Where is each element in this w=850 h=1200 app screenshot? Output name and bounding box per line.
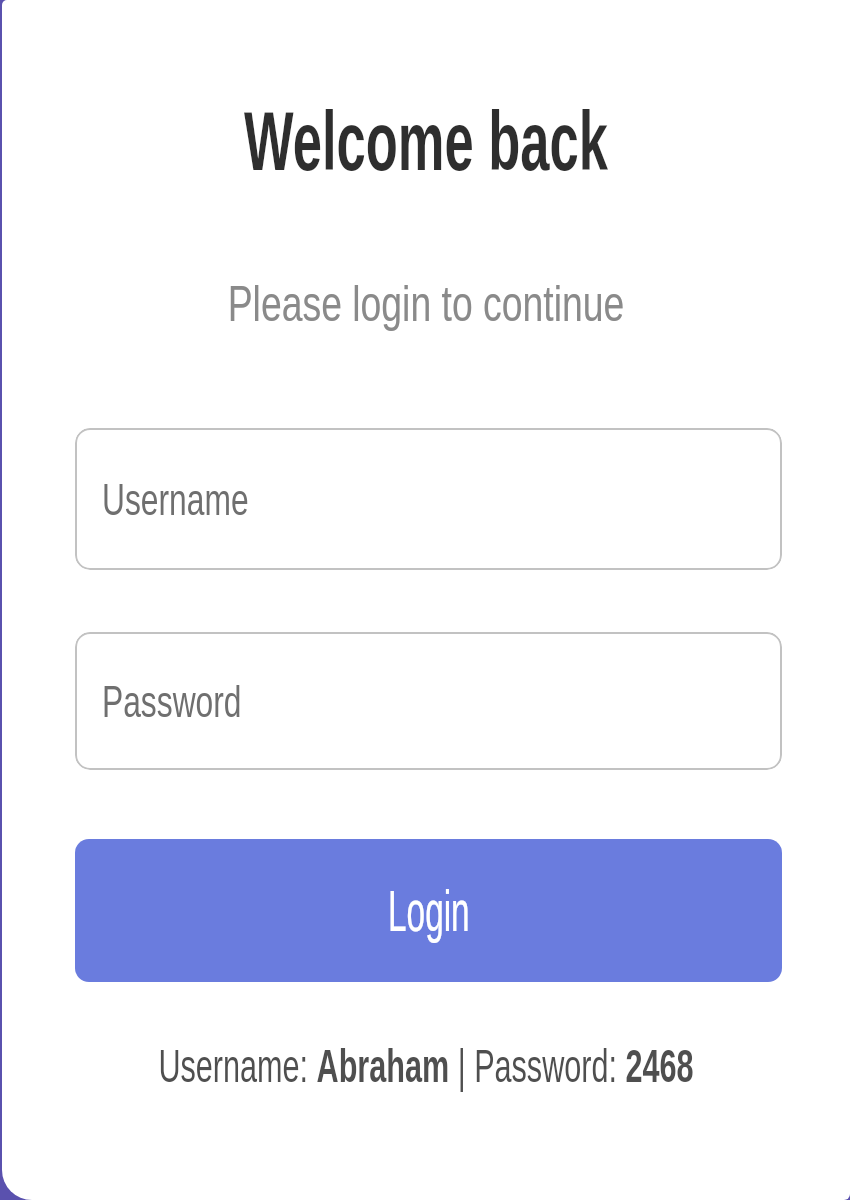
- staticText: Username: Abraham | Password: 2468: [150, 1039, 702, 1092]
- staticText: Welcome back: [161, 94, 691, 188]
- staticText: Login: [388, 879, 470, 943]
- staticText: Please login to continue: [109, 276, 743, 332]
- staticText: Password: [102, 676, 242, 726]
- button[interactable]: Username: [75, 428, 782, 570]
- button[interactable]: Login: [75, 839, 782, 982]
- button[interactable]: Password: [75, 632, 782, 770]
- staticText: Username: [102, 474, 249, 524]
